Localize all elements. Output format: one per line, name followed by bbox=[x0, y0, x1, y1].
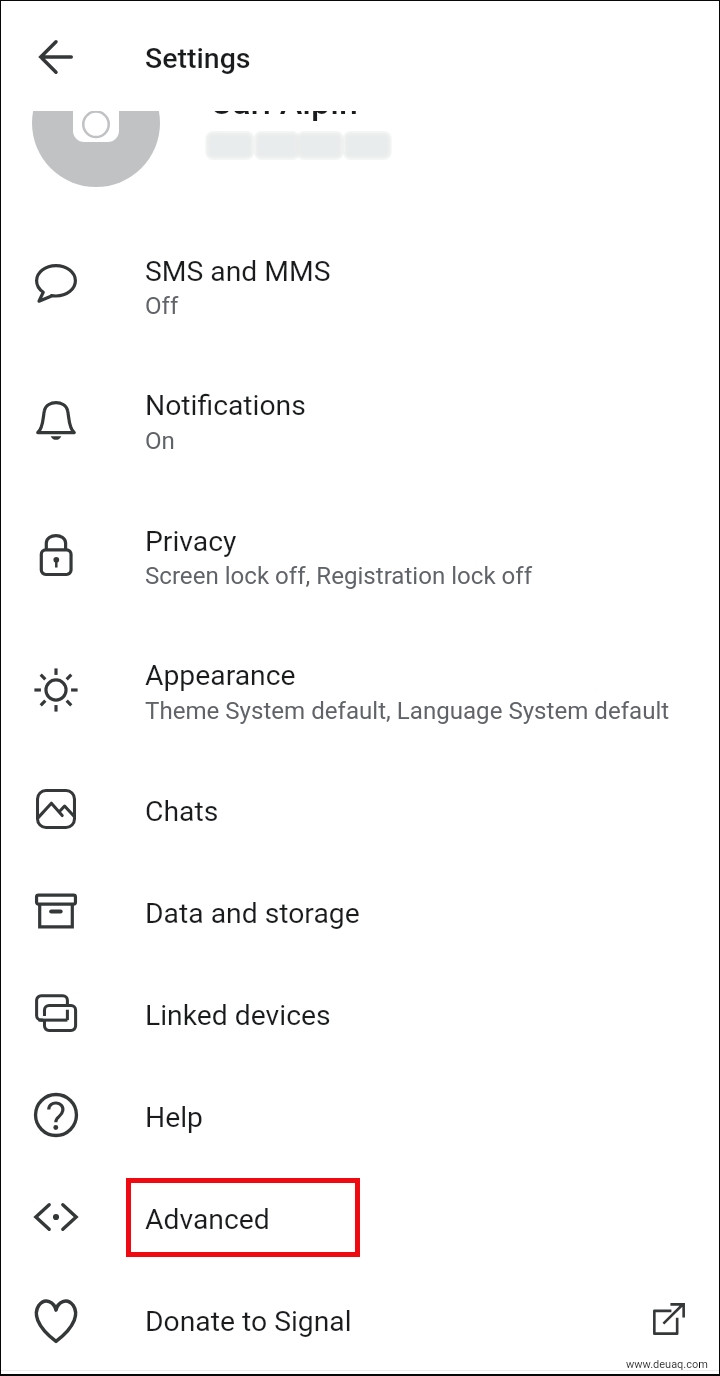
staticText: SMS and MMS bbox=[145, 255, 331, 288]
other: Help bbox=[34, 1093, 78, 1137]
button[interactable] bbox=[0, 1091, 720, 1193]
other: Privacy bbox=[35, 533, 77, 575]
staticText: Linked devices bbox=[145, 999, 331, 1032]
staticText: Off bbox=[145, 292, 179, 320]
other: Appearance bbox=[34, 668, 78, 712]
button[interactable] bbox=[0, 650, 720, 785]
button[interactable]: Back bbox=[0, 0, 112, 111]
button[interactable] bbox=[0, 785, 720, 887]
button[interactable] bbox=[0, 380, 720, 515]
staticText: Data and storage bbox=[145, 897, 360, 930]
other: Notifications bbox=[35, 399, 77, 441]
other: Advanced bbox=[34, 1195, 78, 1239]
button[interactable] bbox=[0, 245, 720, 380]
other: Donate to Signal bbox=[33, 1297, 79, 1343]
button[interactable] bbox=[0, 111, 720, 245]
button[interactable] bbox=[0, 1295, 720, 1376]
staticText: Appearance bbox=[145, 659, 296, 692]
staticText: On bbox=[145, 427, 175, 455]
other: Chats bbox=[36, 789, 76, 829]
staticText: Privacy bbox=[145, 525, 237, 558]
staticText: Settings bbox=[145, 42, 251, 75]
button[interactable] bbox=[0, 989, 720, 1091]
other: Linked devices bbox=[36, 993, 76, 1033]
other: Data and storage bbox=[35, 890, 77, 932]
button[interactable]: Open Signal donate page bbox=[628, 1279, 708, 1359]
staticText: Theme System default, Language System de… bbox=[145, 697, 670, 725]
staticText: Screen lock off, Registration lock off bbox=[145, 562, 533, 590]
button[interactable] bbox=[0, 515, 720, 650]
staticText: www.deuaq.com bbox=[626, 1358, 708, 1371]
staticText: Help bbox=[145, 1101, 203, 1134]
button[interactable] bbox=[0, 1193, 720, 1295]
staticText: Notifications bbox=[145, 389, 306, 422]
staticText: Carl Alpin bbox=[210, 111, 358, 122]
staticText: Chats bbox=[145, 795, 219, 828]
other: SMS and MMS bbox=[35, 264, 77, 306]
staticText: Advanced bbox=[145, 1203, 270, 1236]
button[interactable] bbox=[0, 887, 720, 989]
staticText: Donate to Signal bbox=[145, 1305, 352, 1338]
